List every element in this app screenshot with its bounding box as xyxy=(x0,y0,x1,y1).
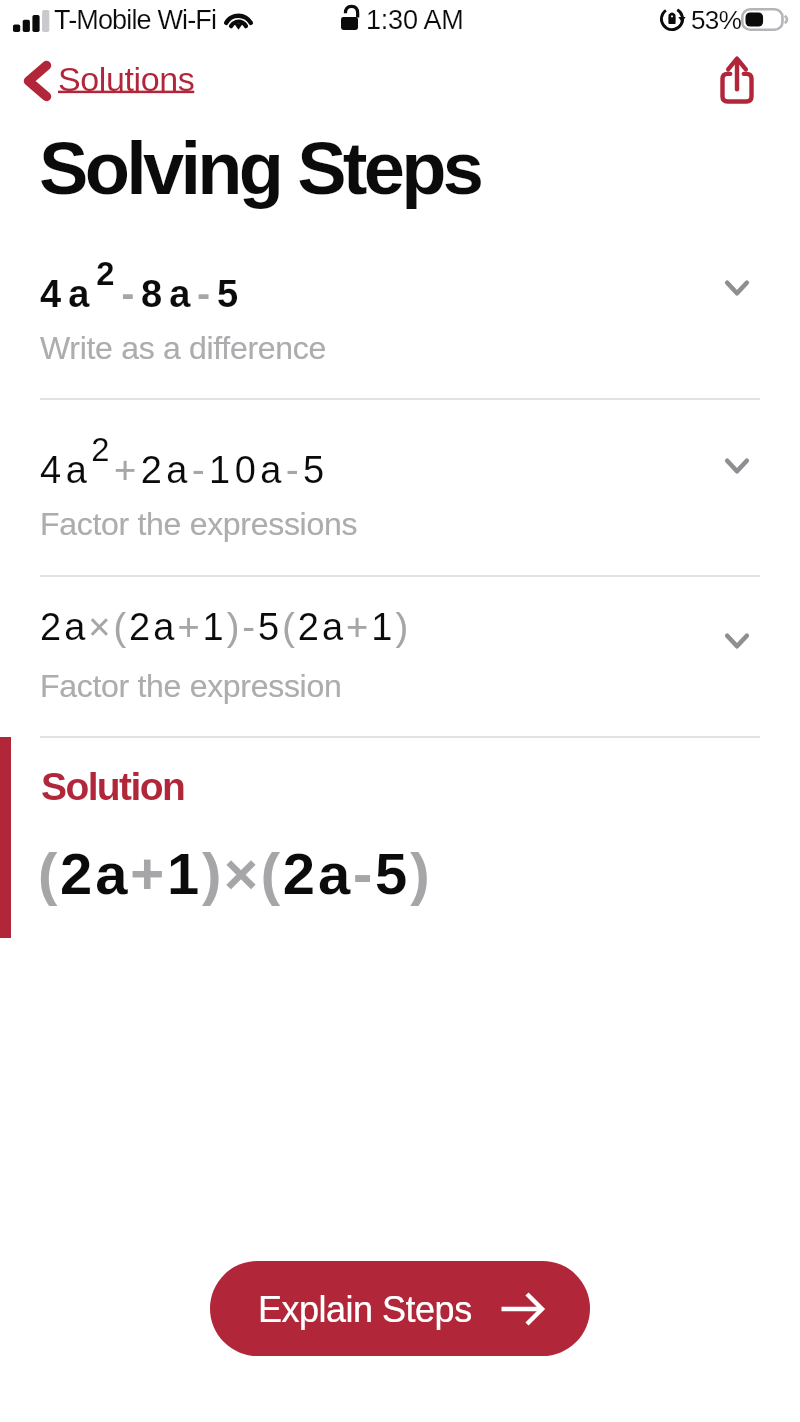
staticText: T-Mobile Wi-Fi xyxy=(54,5,217,35)
staticText: Explain Steps xyxy=(258,1289,472,1329)
staticText: 4a2+2a-10a-5 xyxy=(40,431,329,492)
staticText: Factor the expressions xyxy=(40,506,358,542)
button[interactable]: Expand step xyxy=(713,625,761,657)
staticText: Factor the expression xyxy=(40,668,342,704)
staticText: 53% xyxy=(691,5,742,34)
button[interactable]: Solutions xyxy=(14,55,195,107)
button[interactable]: Expand step xyxy=(713,450,761,482)
button[interactable]: Share xyxy=(720,55,754,104)
button[interactable]: Expand step xyxy=(713,272,761,304)
staticText: Solving Steps xyxy=(39,127,481,210)
staticText: Solutions xyxy=(58,60,195,98)
staticText: Write as a difference xyxy=(40,330,326,366)
staticText: 1:30 AM xyxy=(366,5,464,35)
button[interactable]: Explain Steps xyxy=(210,1261,590,1356)
staticText: Solution xyxy=(41,765,185,809)
staticText: 2a×(2a+1)-5(2a+1) xyxy=(40,606,412,648)
staticText: (2a+1)×(2a-5) xyxy=(38,841,433,906)
staticText: 4a2-8a-5 xyxy=(40,255,246,316)
